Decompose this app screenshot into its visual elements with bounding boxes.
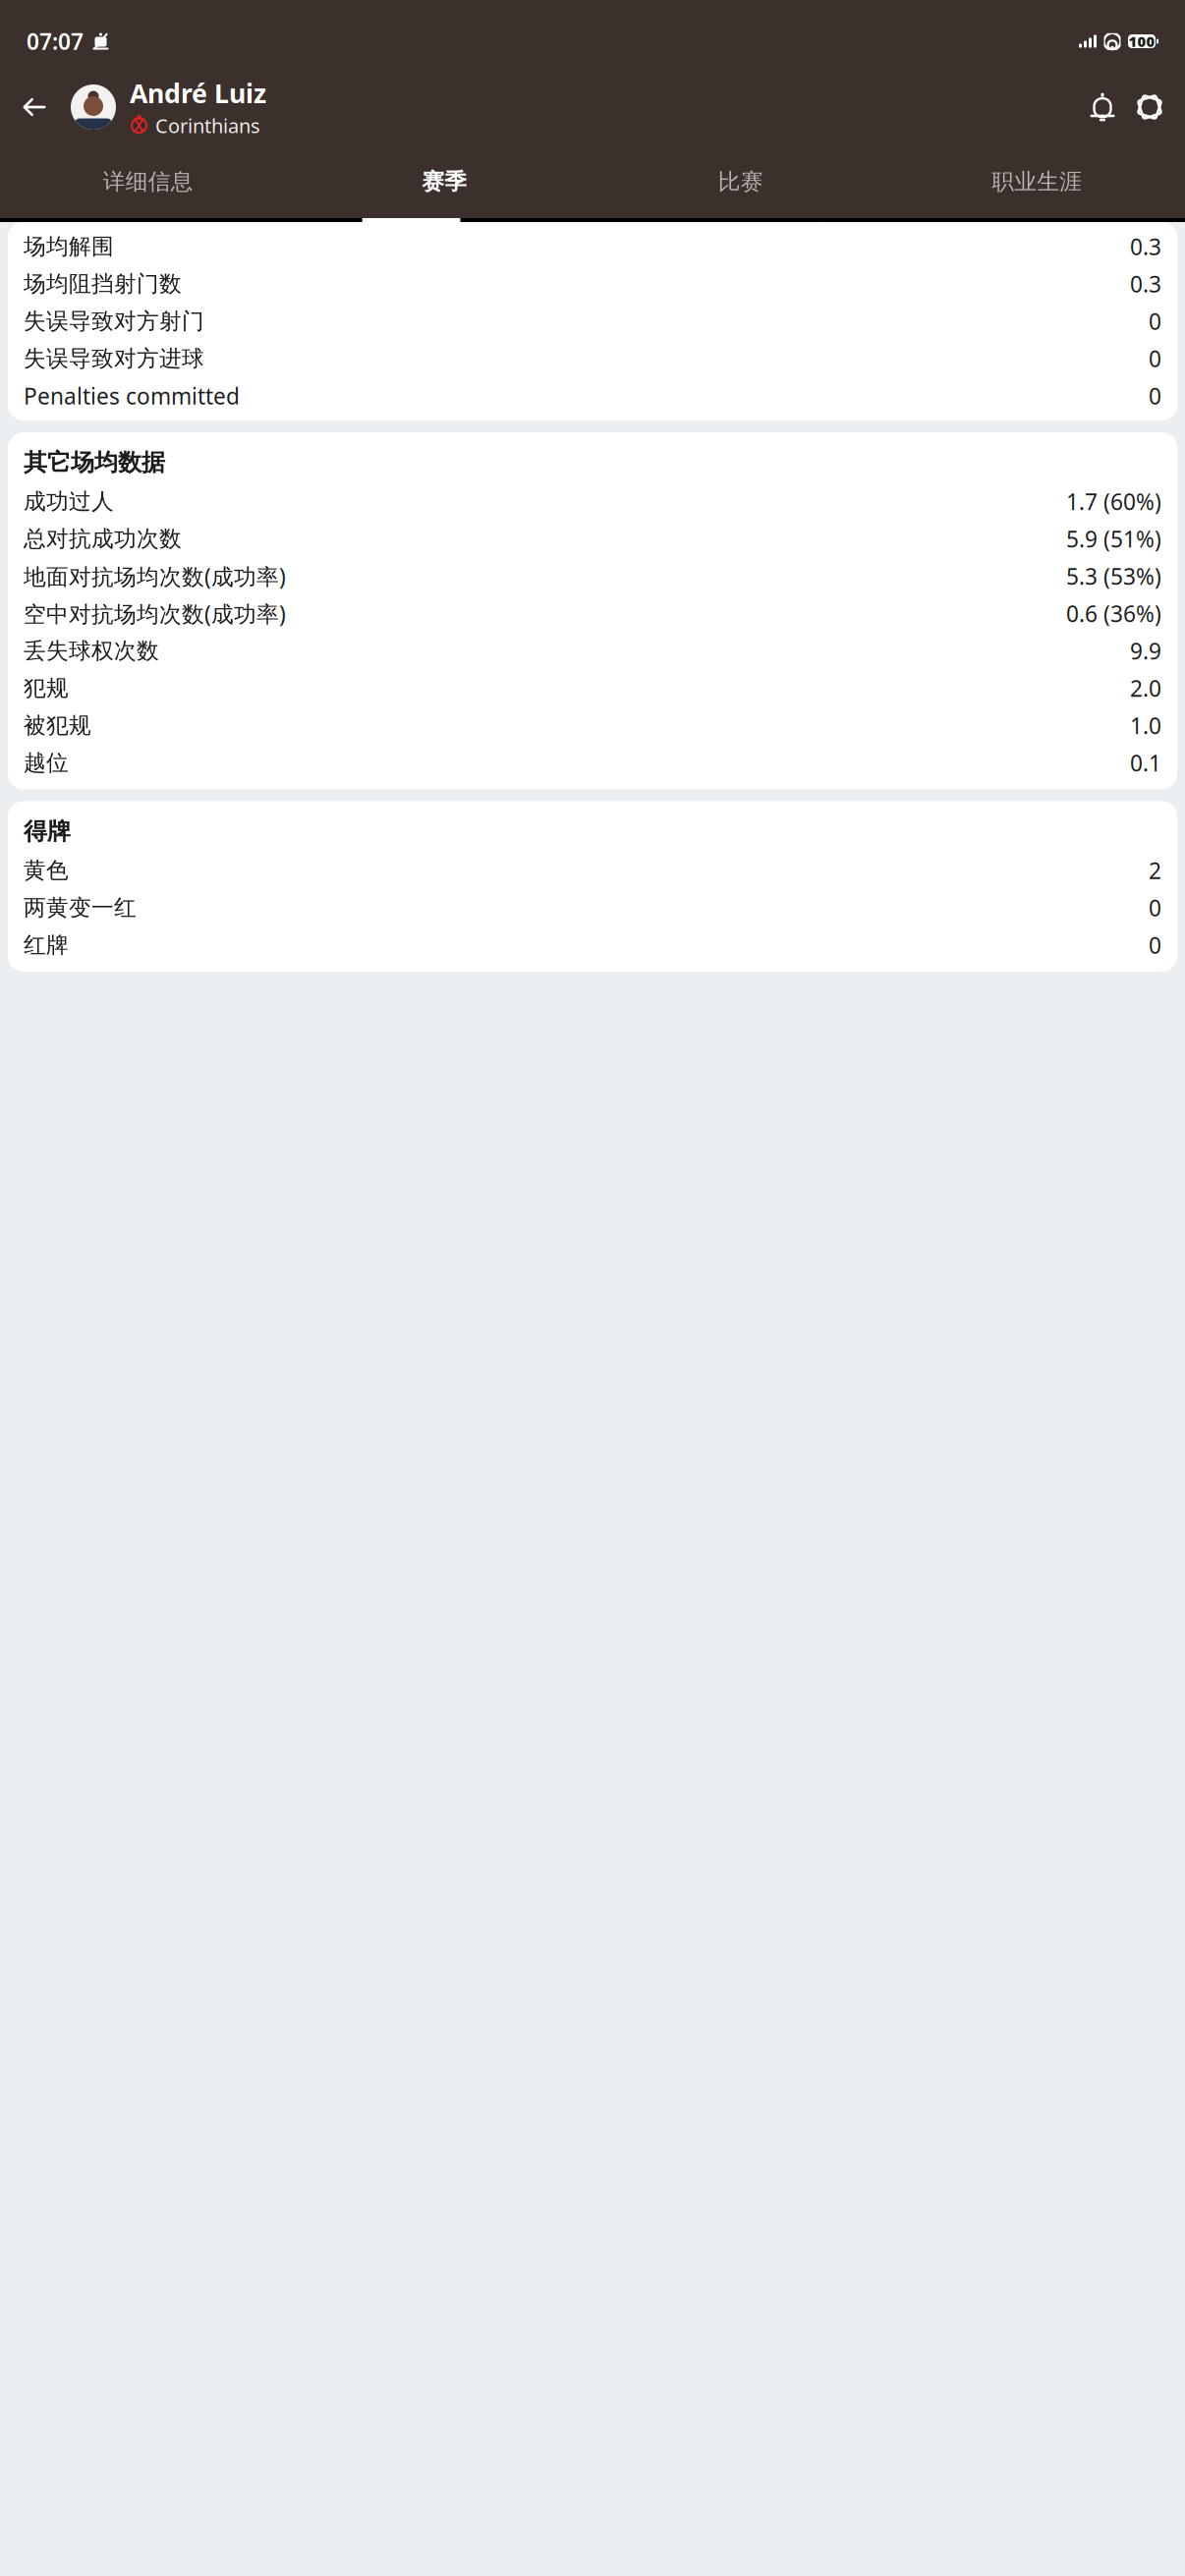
staticText: 0.1 (1130, 748, 1161, 778)
button[interactable]: 赛季 (296, 145, 592, 218)
staticText: 犯规 (24, 675, 69, 702)
staticText: 2.0 (1130, 673, 1161, 703)
staticText: 地面对抗场均次数(成功率) (24, 561, 286, 591)
button[interactable]: 比赛 (592, 145, 889, 218)
button[interactable]: André Luiz (57, 76, 266, 139)
staticText: 赛季 (422, 168, 467, 195)
staticText: 失误导致对方射门 (24, 308, 204, 335)
staticText: 失误导致对方进球 (24, 345, 204, 372)
staticText: 丢失球权次数 (24, 637, 159, 665)
staticText: 黄色 (24, 857, 69, 884)
button[interactable]: Favourite (1126, 84, 1173, 131)
staticText: 红牌 (24, 931, 69, 959)
staticText: 0.6 (36%) (1066, 599, 1161, 628)
button[interactable]: Notifications (1079, 84, 1126, 131)
staticText: 0 (1149, 306, 1161, 336)
staticText: 1.7 (60%) (1066, 487, 1161, 516)
staticText: 100 (1129, 32, 1155, 51)
staticText: 0 (1149, 930, 1161, 960)
staticText: 0.3 (1130, 232, 1161, 261)
staticText: Penalties committed (24, 381, 240, 411)
button[interactable]: Back (12, 84, 57, 130)
staticText: 详细信息 (103, 168, 193, 195)
staticText: 职业生涯 (992, 168, 1082, 195)
staticText: 5.3 (53%) (1066, 561, 1161, 591)
staticText: 比赛 (718, 168, 763, 195)
staticText: 07:07 (27, 26, 84, 56)
staticText: Corinthians (155, 112, 260, 139)
staticText: 5.9 (51%) (1066, 524, 1161, 554)
staticText: 0.3 (1130, 269, 1161, 299)
staticText: 空中对抗场均次数(成功率) (24, 599, 286, 628)
staticText: 两黄变一红 (24, 894, 137, 921)
staticText: 2 (1149, 856, 1161, 885)
button[interactable]: 职业生涯 (889, 145, 1185, 218)
staticText: 被犯规 (24, 712, 91, 739)
staticText: André Luiz (130, 76, 266, 110)
staticText: 0 (1149, 893, 1161, 923)
staticText: 0 (1149, 344, 1161, 373)
staticText: 1.0 (1130, 711, 1161, 740)
staticText: 总对抗成功次数 (24, 525, 182, 553)
staticText: 其它场均数据 (24, 448, 165, 477)
button[interactable]: 详细信息 (0, 145, 296, 218)
staticText: 成功过人 (24, 488, 114, 515)
staticText: 越位 (24, 749, 69, 777)
staticText: 0 (1149, 381, 1161, 411)
staticText: 场均阻挡射门数 (24, 270, 182, 298)
staticText: 场均解围 (24, 233, 114, 260)
staticText: 9.9 (1130, 636, 1161, 666)
staticText: 得牌 (24, 817, 71, 846)
